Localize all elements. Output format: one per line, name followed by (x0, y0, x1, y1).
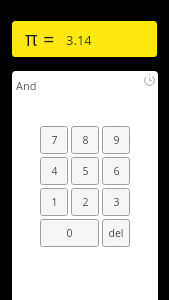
button[interactable]: del (102, 219, 130, 247)
staticText: 6 (113, 164, 120, 178)
staticText: 5 (82, 164, 89, 178)
button[interactable]: 8 (71, 126, 99, 154)
staticText: And (16, 78, 37, 93)
button[interactable]: 6 (102, 157, 130, 185)
button[interactable]: 5 (71, 157, 99, 185)
button[interactable]: 2 (71, 188, 99, 216)
button[interactable]: 4 (40, 157, 68, 185)
button[interactable]: π (12, 21, 157, 57)
button[interactable]: 9 (102, 126, 130, 154)
button[interactable]: 7 (40, 126, 68, 154)
staticText: 8 (82, 133, 89, 147)
staticText: 2 (82, 195, 89, 209)
staticText: del (108, 226, 124, 240)
staticText: = (43, 26, 55, 53)
staticText: 9 (113, 133, 120, 147)
staticText: 7 (51, 133, 58, 147)
button[interactable]: History (138, 71, 158, 91)
staticText: 1 (51, 195, 58, 209)
button[interactable]: 0 (40, 219, 99, 247)
staticText: 3 (113, 195, 120, 209)
staticText: 4 (51, 164, 58, 178)
button[interactable]: 1 (40, 188, 68, 216)
staticText: π (25, 26, 38, 52)
staticText: 0 (66, 226, 73, 240)
button[interactable]: 3 (102, 188, 130, 216)
staticText: 3.14 (66, 31, 92, 49)
